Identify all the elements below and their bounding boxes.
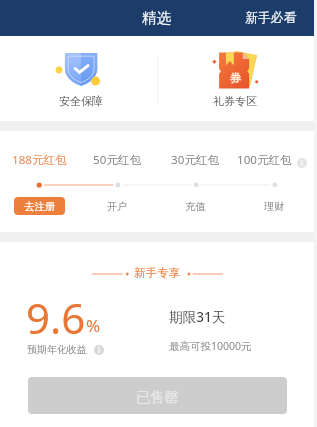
staticText: 开户 [107, 200, 128, 213]
staticText: 50元红包 [93, 152, 142, 168]
button[interactable]: 新手必看 [228, 4, 314, 32]
staticText: 100元红包 [237, 152, 292, 168]
staticText: 券 [230, 71, 241, 85]
button[interactable]: 已售罄 [28, 377, 287, 414]
staticText: 精选 [142, 9, 172, 27]
button[interactable]: 券 [157, 36, 314, 121]
staticText: 安全保障 [59, 94, 103, 108]
staticText: 预期年化收益 [27, 343, 87, 356]
staticText: 最高可投10000元 [169, 339, 252, 353]
staticText: 理财 [264, 200, 285, 213]
button[interactable]: 安全保障 [0, 36, 157, 121]
staticText: 已售罄 [136, 388, 179, 406]
button[interactable]: 说明 [297, 158, 307, 168]
staticText: 礼券专区 [213, 94, 257, 108]
staticText: 新手必看 [245, 10, 297, 26]
staticText: 期限31天 [169, 307, 226, 326]
staticText: 充值 [185, 200, 206, 213]
staticText: % [86, 314, 101, 337]
button[interactable]: 理财 [254, 197, 295, 215]
staticText: 新手专享 [134, 266, 181, 281]
button[interactable]: 充值 [175, 197, 216, 215]
staticText: 188元红包 [12, 152, 67, 168]
staticText: 9.6 [26, 289, 86, 346]
staticText: 30元红包 [171, 152, 220, 168]
button[interactable]: 收益说明 [94, 345, 104, 355]
button[interactable]: 去注册 [14, 197, 65, 215]
staticText: 去注册 [24, 200, 56, 213]
button[interactable]: 开户 [97, 197, 138, 215]
